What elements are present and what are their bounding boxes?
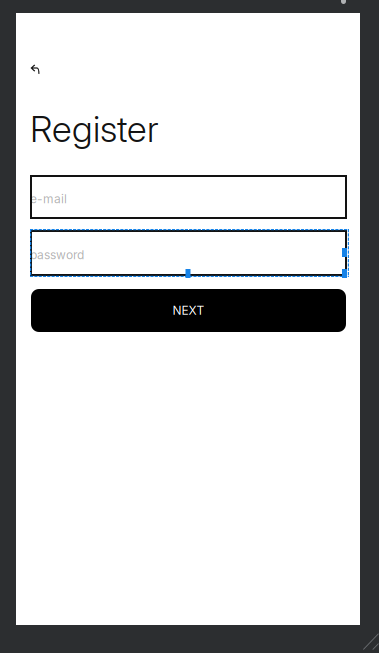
staticText: e-mail — [30, 192, 67, 206]
staticText: password — [30, 248, 84, 262]
staticText: Register — [30, 107, 158, 151]
button[interactable]: Back — [25, 59, 47, 81]
staticText: NEXT — [172, 303, 204, 318]
button[interactable]: NEXT — [31, 289, 346, 332]
